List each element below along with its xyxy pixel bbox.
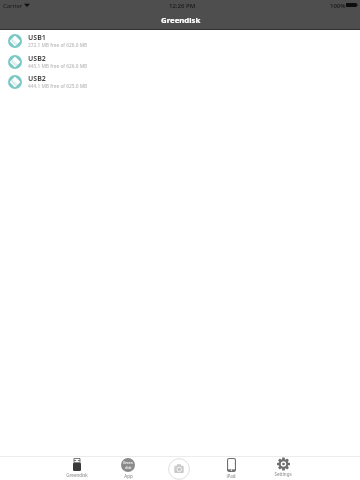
staticText: disk [125, 465, 132, 470]
button[interactable]: Greendisk [51, 456, 102, 480]
staticText: App [124, 473, 133, 479]
button[interactable]: USB2 [0, 51, 360, 72]
staticText: 444.1 MB free of 625.0 MB [28, 83, 88, 90]
staticText: iPad [226, 473, 236, 479]
button[interactable]: Green [102, 456, 153, 480]
staticText: 100% [330, 2, 346, 10]
button[interactable]: iPad [205, 456, 257, 480]
button[interactable]: USB1 [0, 30, 360, 51]
button[interactable]: Settings [257, 456, 309, 480]
staticText: Green [123, 460, 133, 465]
staticText: 12:26 PM [169, 2, 196, 10]
staticText: 272.1 MB free of 626.0 MB [28, 42, 88, 49]
button[interactable]: Camera [153, 456, 205, 480]
staticText: USB2 [28, 54, 46, 64]
staticText: Greendisk [66, 472, 88, 478]
staticText: 445.1 MB free of 626.0 MB [28, 63, 88, 70]
staticText: Greendisk [161, 15, 201, 26]
staticText: Carrier [3, 2, 23, 10]
button[interactable]: USB2 [0, 71, 360, 92]
staticText: USB1 [28, 33, 46, 43]
staticText: Settings [274, 471, 292, 477]
staticText: USB2 [28, 74, 46, 84]
